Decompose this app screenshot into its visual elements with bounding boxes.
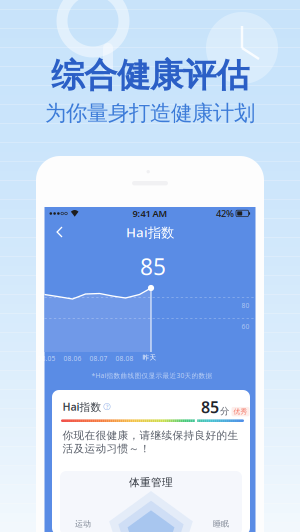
staticText: 为你量身打造健康计划 bbox=[45, 100, 255, 126]
staticText: 08.05 bbox=[37, 354, 55, 363]
staticText: Hai指数 bbox=[62, 399, 101, 414]
staticText: 08.06 bbox=[63, 354, 81, 363]
staticText: 运动 bbox=[75, 519, 91, 529]
staticText: 08.08 bbox=[115, 354, 133, 363]
staticText: 85 bbox=[201, 396, 219, 418]
staticText: *Hai指数曲线图仅显示最近30天的数据 bbox=[91, 371, 212, 380]
staticText: 85 bbox=[140, 251, 166, 282]
staticText: ? bbox=[106, 403, 108, 410]
staticText: 优秀 bbox=[233, 408, 247, 416]
staticText: 80 bbox=[241, 301, 249, 310]
staticText: 60 bbox=[241, 322, 249, 331]
staticText: Hai指数 bbox=[126, 223, 174, 241]
staticText: 42% bbox=[216, 207, 234, 220]
staticText: 分 bbox=[220, 405, 229, 417]
staticText: 08.07 bbox=[89, 354, 107, 363]
staticText: 昨天 bbox=[142, 353, 156, 362]
button[interactable]: Back bbox=[49, 221, 71, 243]
staticText: 9:41 AM bbox=[132, 207, 167, 220]
staticText: 睡眠 bbox=[213, 519, 229, 529]
staticText: 你现在很健康，请继续保持良好的生活及运动习惯～！ bbox=[62, 429, 238, 455]
staticText: 综合健康评估 bbox=[51, 55, 249, 96]
staticText: 体重管理 bbox=[129, 476, 173, 489]
